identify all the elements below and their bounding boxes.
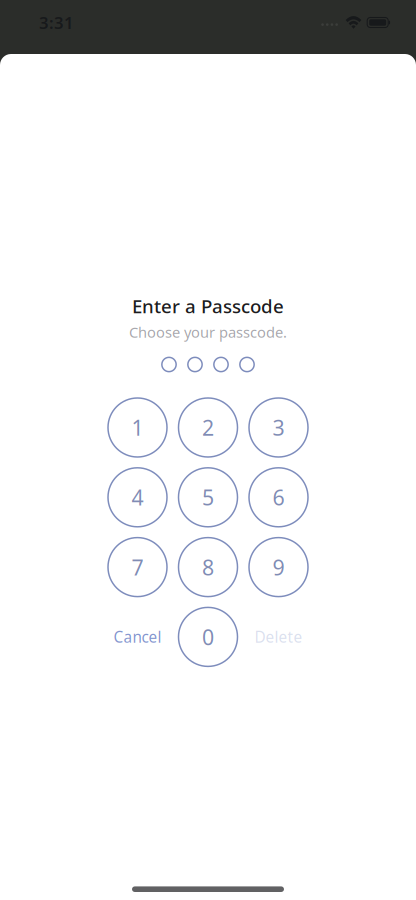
button[interactable]: 9 bbox=[249, 538, 308, 597]
staticText: Choose your passcode. bbox=[129, 322, 287, 342]
staticText: 1 bbox=[131, 413, 143, 442]
staticText: 9 bbox=[272, 553, 284, 582]
staticText: 3 bbox=[272, 413, 284, 442]
button[interactable]: 3 bbox=[249, 398, 308, 457]
staticText: Delete bbox=[254, 626, 302, 647]
staticText: 4 bbox=[131, 483, 143, 512]
button[interactable]: Delete bbox=[241, 607, 316, 666]
staticText: 7 bbox=[131, 553, 143, 582]
button[interactable]: 8 bbox=[178, 538, 237, 597]
button[interactable]: 7 bbox=[108, 538, 167, 597]
staticText: 8 bbox=[202, 553, 214, 582]
staticText: Enter a Passcode bbox=[132, 293, 284, 319]
staticText: 3:31 bbox=[39, 11, 74, 34]
staticText: 6 bbox=[272, 483, 284, 512]
button[interactable]: 6 bbox=[249, 468, 308, 527]
button[interactable]: 1 bbox=[108, 398, 167, 457]
staticText: 2 bbox=[202, 413, 214, 442]
button[interactable]: Cancel bbox=[100, 607, 175, 666]
staticText: Cancel bbox=[113, 626, 161, 647]
staticText: 5 bbox=[202, 483, 214, 512]
staticText: 0 bbox=[202, 622, 214, 651]
button[interactable]: 2 bbox=[178, 398, 237, 457]
button[interactable]: 4 bbox=[108, 468, 167, 527]
button[interactable]: 0 bbox=[178, 607, 237, 666]
button[interactable]: 5 bbox=[178, 468, 237, 527]
